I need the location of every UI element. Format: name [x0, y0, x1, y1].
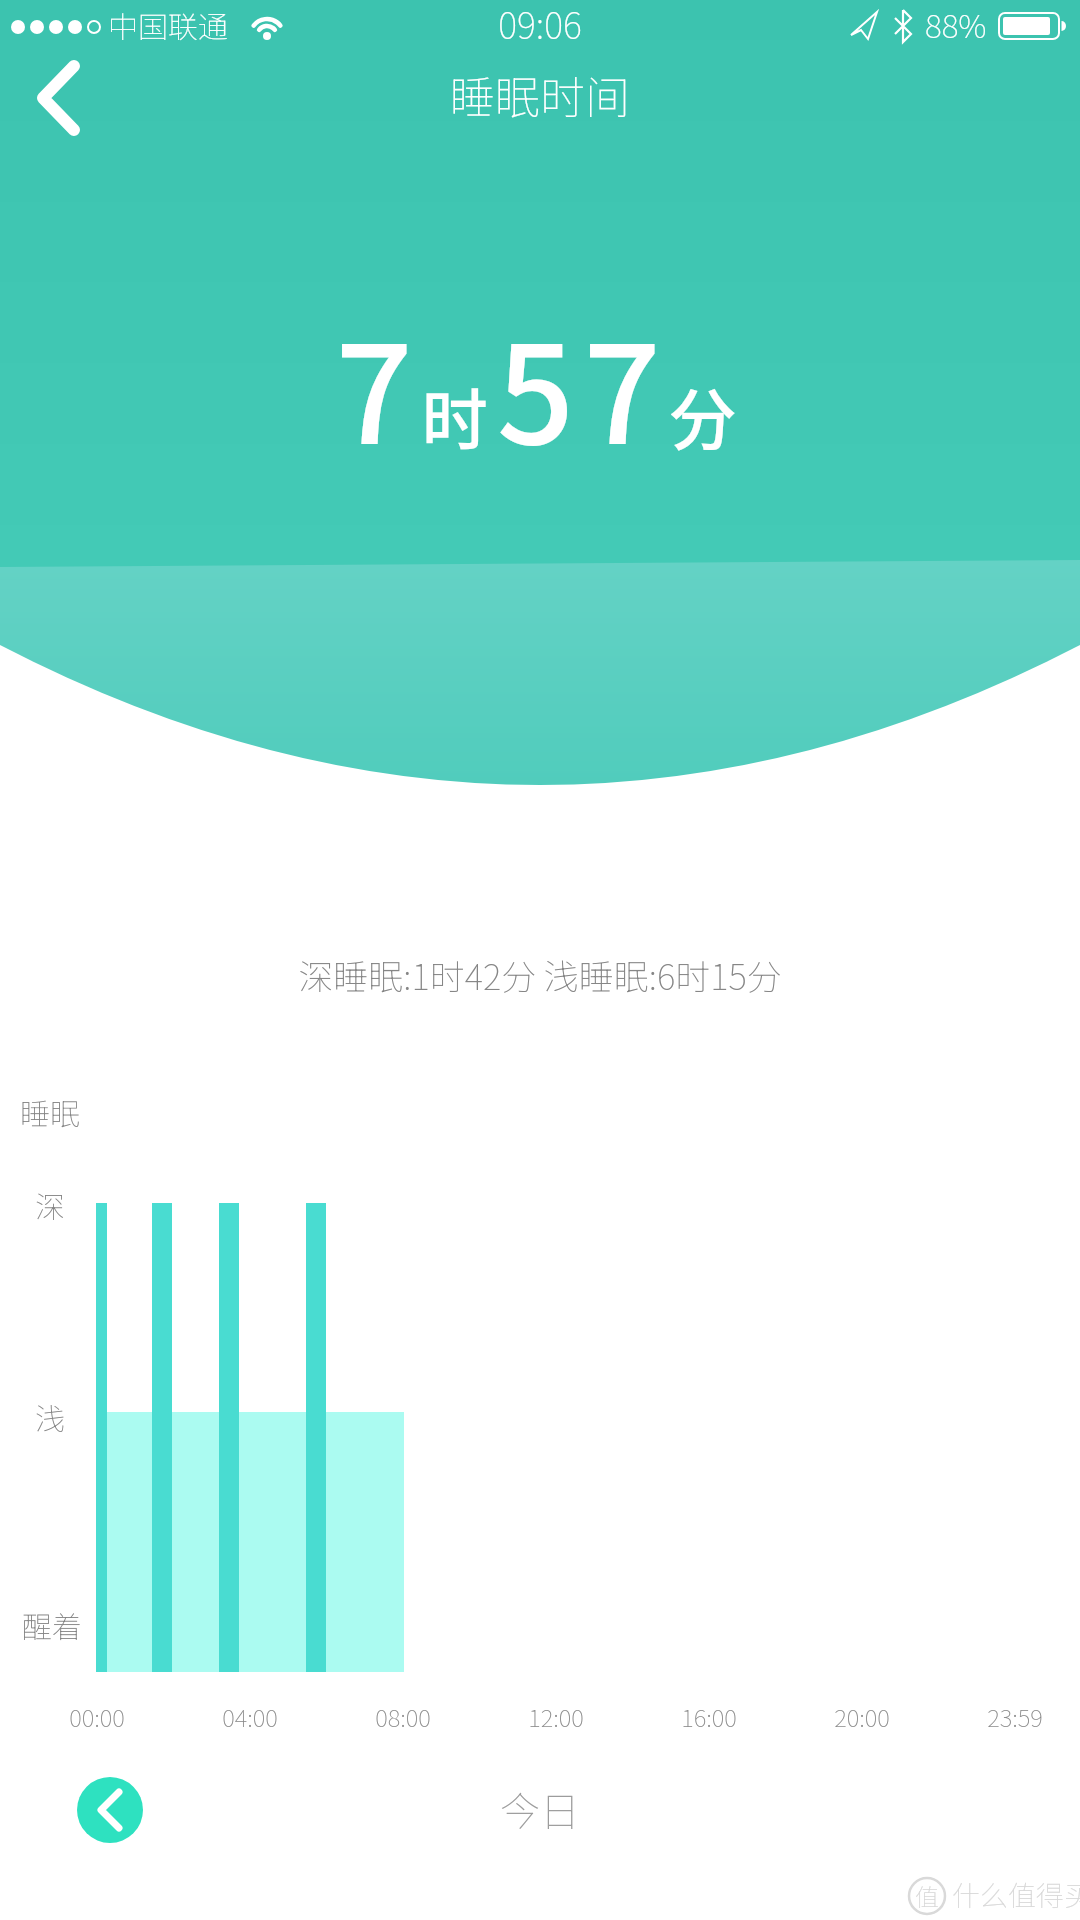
staticText: 值 [915, 1878, 939, 1913]
staticText: 睡眠时间 [0, 62, 1080, 127]
staticText: 睡眠 [20, 1090, 80, 1133]
staticText: 04:00 [210, 1699, 290, 1734]
staticText: 12:00 [516, 1699, 596, 1734]
staticText: 浅 [35, 1395, 65, 1438]
staticText: 09:06 [0, 0, 1080, 49]
staticText: 今日 [0, 1780, 1080, 1838]
staticText: 88% [925, 1, 987, 47]
staticText: 什么值得买 [952, 1874, 1080, 1915]
staticText: 深睡眠:1时42分 浅睡眠:6时15分 [0, 949, 1080, 1000]
staticText: 00:00 [57, 1699, 137, 1734]
staticText: 醒着 [22, 1603, 82, 1646]
staticText: 20:00 [822, 1699, 902, 1734]
staticText: 23:59 [975, 1699, 1055, 1734]
button[interactable] [77, 1777, 143, 1843]
staticText: 16:00 [669, 1699, 749, 1734]
staticText: 7时57分 [0, 286, 1080, 483]
staticText: 中国联通 [108, 3, 228, 46]
staticText: 08:00 [363, 1699, 443, 1734]
staticText: 深 [35, 1183, 65, 1226]
button[interactable]: 今日 [0, 1780, 1080, 1838]
button[interactable] [10, 50, 110, 150]
